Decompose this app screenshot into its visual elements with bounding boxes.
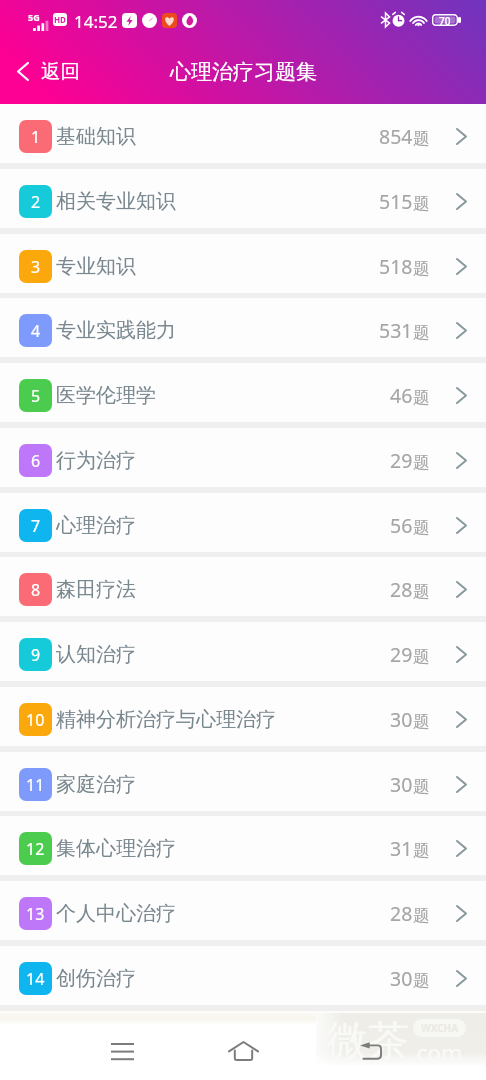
staticText: 30 (390, 706, 413, 733)
staticText: 题 (413, 646, 430, 667)
button[interactable]: 10 (0, 687, 486, 746)
button[interactable]: 1 (0, 104, 486, 163)
staticText: 森田疗法 (56, 577, 136, 602)
staticText: 题 (413, 581, 430, 602)
button[interactable]: 9 (0, 622, 486, 681)
staticText: 10 (26, 709, 45, 731)
staticText: 医学伦理学 (56, 383, 156, 408)
button[interactable]: 3 (0, 234, 486, 293)
staticText: 行为治疗 (56, 448, 136, 473)
staticText: 56 (390, 512, 413, 539)
button[interactable]: 6 (0, 428, 486, 487)
staticText: 28 (390, 576, 413, 603)
staticText: 题 (413, 970, 430, 991)
staticText: 题 (413, 452, 430, 473)
staticText: 7 (31, 515, 41, 537)
staticText: 29 (390, 641, 413, 668)
staticText: 题 (413, 387, 430, 408)
staticText: 题 (413, 193, 430, 214)
button[interactable]: 2 (0, 169, 486, 228)
staticText: 专业实践能力 (56, 318, 176, 343)
staticText: .com (410, 1037, 463, 1068)
staticText: 14:52 (74, 10, 118, 33)
button[interactable]: 11 (0, 752, 486, 811)
staticText: 46 (390, 382, 413, 409)
staticText: 13 (26, 903, 45, 925)
staticText: 心理治疗习题集 (170, 59, 317, 85)
staticText: 5 (31, 385, 41, 407)
staticText: 70 (439, 14, 451, 26)
staticText: 集体心理治疗 (56, 836, 176, 861)
button[interactable]: 4 (0, 298, 486, 357)
staticText: 31 (390, 835, 413, 862)
staticText: 11 (26, 774, 45, 796)
staticText: 题 (413, 840, 430, 861)
staticText: 531 (379, 317, 413, 344)
staticText: 家庭治疗 (56, 772, 136, 797)
staticText: 29 (390, 447, 413, 474)
button[interactable]: 返回 (0, 54, 96, 89)
staticText: 2 (31, 191, 41, 213)
staticText: 4 (31, 320, 41, 342)
staticText: HD (54, 14, 66, 25)
staticText: 微茶 (327, 1016, 409, 1068)
button[interactable]: Home (217, 1025, 269, 1077)
staticText: 精神分析治疗与心理治疗 (56, 707, 276, 732)
staticText: 12 (26, 838, 45, 860)
staticText: 28 (390, 900, 413, 927)
button[interactable]: Recent apps (96, 1025, 148, 1077)
staticText: 题 (413, 711, 430, 732)
staticText: 30 (390, 771, 413, 798)
staticText: 题 (413, 517, 430, 538)
button[interactable]: 12 (0, 816, 486, 875)
staticText: 515 (379, 188, 413, 215)
staticText: 专业知识 (56, 254, 136, 279)
staticText: WXCHA (421, 1021, 459, 1035)
staticText: 题 (413, 905, 430, 926)
staticText: 题 (413, 258, 430, 279)
staticText: 854 (379, 123, 413, 150)
staticText: 基础知识 (56, 124, 136, 149)
staticText: 14 (26, 968, 45, 990)
staticText: 8 (31, 579, 41, 601)
staticText: 创伤治疗 (56, 966, 136, 991)
staticText: 30 (390, 965, 413, 992)
staticText: 认知治疗 (56, 642, 136, 667)
staticText: 3 (31, 256, 41, 278)
staticText: 返回 (41, 59, 80, 84)
button[interactable]: 8 (0, 557, 486, 616)
staticText: 518 (379, 253, 413, 280)
staticText: 个人中心治疗 (56, 901, 176, 926)
staticText: 题 (413, 128, 430, 149)
button[interactable]: 14 (0, 946, 486, 1005)
staticText: 5G (28, 11, 40, 23)
button[interactable]: 13 (0, 881, 486, 940)
staticText: 6 (31, 450, 41, 472)
button[interactable]: Back (345, 1025, 397, 1077)
staticText: 相关专业知识 (56, 189, 176, 214)
staticText: 9 (31, 644, 41, 666)
staticText: 1 (31, 126, 41, 148)
button[interactable]: 7 (0, 493, 486, 552)
button[interactable]: 5 (0, 363, 486, 422)
staticText: 题 (413, 322, 430, 343)
staticText: 题 (413, 776, 430, 797)
staticText: 心理治疗 (56, 513, 136, 538)
